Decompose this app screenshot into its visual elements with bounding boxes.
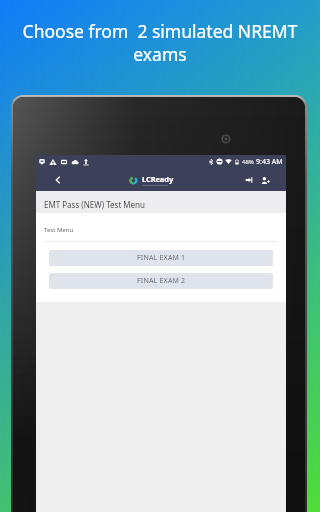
staticText: Test Menu	[44, 226, 74, 234]
staticText: EMT Pass (NEW) Test Menu	[44, 199, 146, 210]
staticText: 48%	[242, 158, 254, 166]
button[interactable]: Back	[50, 172, 66, 188]
staticText: FINAL EXAM 1	[137, 253, 186, 263]
staticText: FINAL EXAM 2	[137, 276, 186, 286]
button[interactable]: FINAL EXAM 2	[49, 273, 273, 289]
button[interactable]: Login	[242, 173, 256, 187]
staticText: 9:43 AM	[256, 157, 283, 167]
staticText: Choose from 2 simulated NREMT exams	[8, 19, 312, 67]
button[interactable]: Add account	[258, 173, 272, 187]
staticText: LCReady	[142, 174, 174, 184]
button[interactable]: FINAL EXAM 1	[49, 250, 273, 266]
